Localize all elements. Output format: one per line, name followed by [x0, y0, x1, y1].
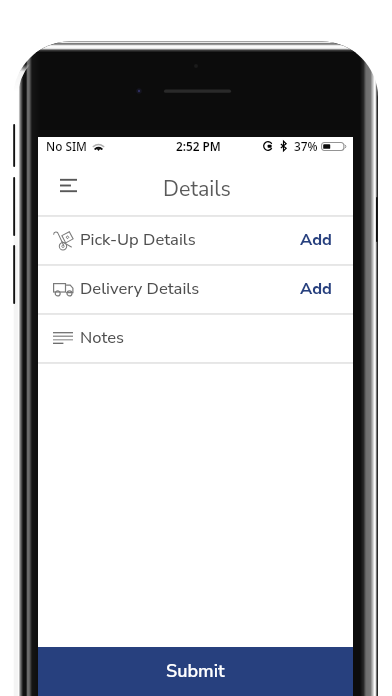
- staticText: Delivery Details: [80, 277, 200, 300]
- staticText: 2:52 PM: [176, 138, 221, 154]
- staticText: Submit: [166, 659, 225, 684]
- staticText: No SIM: [46, 138, 87, 154]
- button[interactable]: Notes: [38, 315, 353, 362]
- button[interactable]: Submit: [38, 647, 353, 696]
- staticText: Add: [300, 277, 332, 300]
- button[interactable]: Open navigation menu: [51, 168, 85, 202]
- staticText: Add: [300, 228, 332, 251]
- staticText: Notes: [80, 326, 124, 349]
- staticText: Pick-Up Details: [80, 228, 196, 251]
- staticText: Details: [163, 174, 231, 203]
- staticText: 37%: [294, 138, 318, 154]
- button[interactable]: Delivery Details: [38, 266, 353, 313]
- button[interactable]: Pick-Up Details: [38, 217, 353, 264]
